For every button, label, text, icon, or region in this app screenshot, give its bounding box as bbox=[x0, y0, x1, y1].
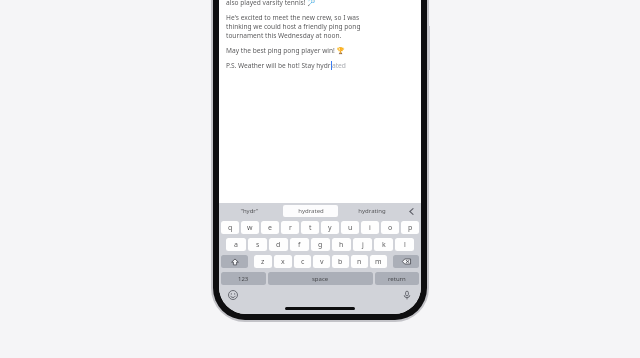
staticText: y bbox=[328, 223, 332, 233]
staticText: return bbox=[388, 275, 406, 283]
staticText: s bbox=[256, 240, 260, 250]
staticText: space bbox=[312, 275, 329, 283]
button[interactable]: f bbox=[290, 238, 309, 251]
button[interactable]: j bbox=[353, 238, 372, 251]
button[interactable]: Collapse suggestions bbox=[402, 203, 421, 219]
staticText: t bbox=[309, 223, 312, 233]
staticText: d bbox=[276, 240, 281, 250]
staticText: i bbox=[369, 223, 371, 233]
button[interactable]: e bbox=[261, 221, 279, 234]
staticText: "hydr" bbox=[240, 207, 259, 215]
staticText: thinking we could host a friendly ping p… bbox=[226, 22, 361, 31]
staticText: w bbox=[247, 223, 253, 233]
staticText: hydrated bbox=[298, 207, 324, 215]
staticText: m bbox=[375, 257, 382, 267]
button[interactable]: Delete bbox=[393, 255, 419, 268]
button[interactable]: o bbox=[381, 221, 399, 234]
button[interactable]: l bbox=[395, 238, 414, 251]
button[interactable]: Shift bbox=[221, 255, 248, 268]
staticText: hydrating bbox=[358, 207, 386, 215]
button[interactable]: n bbox=[351, 255, 368, 268]
staticText: ated bbox=[332, 61, 346, 70]
staticText: He's excited to meet the new crew, so I … bbox=[226, 13, 360, 22]
staticText: r bbox=[289, 223, 292, 233]
staticText: tournament this Wednesday at noon. bbox=[226, 31, 342, 40]
staticText: May the best ping pong player win! 🏆 bbox=[226, 46, 345, 55]
button[interactable]: d bbox=[269, 238, 288, 251]
button[interactable]: a bbox=[226, 238, 246, 251]
staticText: p bbox=[408, 223, 413, 233]
button[interactable]: x bbox=[274, 255, 292, 268]
staticText: v bbox=[320, 257, 324, 267]
staticText: o bbox=[388, 223, 393, 233]
staticText: n bbox=[357, 257, 362, 267]
button[interactable]: g bbox=[311, 238, 330, 251]
button[interactable]: p bbox=[401, 221, 419, 234]
staticText: k bbox=[382, 240, 386, 250]
button[interactable]: v bbox=[313, 255, 330, 268]
button[interactable]: h bbox=[332, 238, 351, 251]
button[interactable]: k bbox=[374, 238, 393, 251]
button[interactable]: c bbox=[294, 255, 311, 268]
staticText: 123 bbox=[238, 275, 249, 283]
button[interactable]: hydrating bbox=[344, 205, 399, 217]
staticText: g bbox=[318, 240, 323, 250]
staticText: P.S. Weather will be hot! Stay hydr bbox=[226, 61, 331, 70]
button[interactable]: space bbox=[268, 272, 373, 285]
staticText: f bbox=[298, 240, 301, 250]
button[interactable]: 123 bbox=[221, 272, 266, 285]
button[interactable]: q bbox=[221, 221, 239, 234]
button[interactable]: u bbox=[341, 221, 359, 234]
button[interactable]: i bbox=[361, 221, 379, 234]
button[interactable]: return bbox=[375, 272, 419, 285]
staticText: b bbox=[338, 257, 343, 267]
staticText: h bbox=[339, 240, 344, 250]
staticText: q bbox=[228, 223, 233, 233]
button[interactable]: Emoji keyboard bbox=[228, 290, 238, 300]
button[interactable]: z bbox=[254, 255, 272, 268]
button[interactable]: b bbox=[332, 255, 349, 268]
button[interactable]: r bbox=[281, 221, 299, 234]
staticText: l bbox=[404, 240, 406, 250]
button[interactable]: m bbox=[370, 255, 387, 268]
button[interactable]: "hydr" bbox=[222, 205, 277, 217]
staticText: also played varsity tennis! 🏸 bbox=[226, 0, 316, 7]
button[interactable]: y bbox=[321, 221, 339, 234]
staticText: c bbox=[301, 257, 305, 267]
staticText: z bbox=[261, 257, 265, 267]
staticText: x bbox=[281, 257, 285, 267]
button[interactable]: w bbox=[241, 221, 259, 234]
staticText: a bbox=[234, 240, 238, 250]
button[interactable]: t bbox=[301, 221, 319, 234]
staticText: e bbox=[268, 223, 272, 233]
staticText: u bbox=[348, 223, 353, 233]
button[interactable]: Dictation bbox=[402, 290, 412, 300]
staticText: j bbox=[362, 240, 364, 250]
button[interactable]: hydrated bbox=[283, 205, 338, 217]
button[interactable]: s bbox=[248, 238, 267, 251]
